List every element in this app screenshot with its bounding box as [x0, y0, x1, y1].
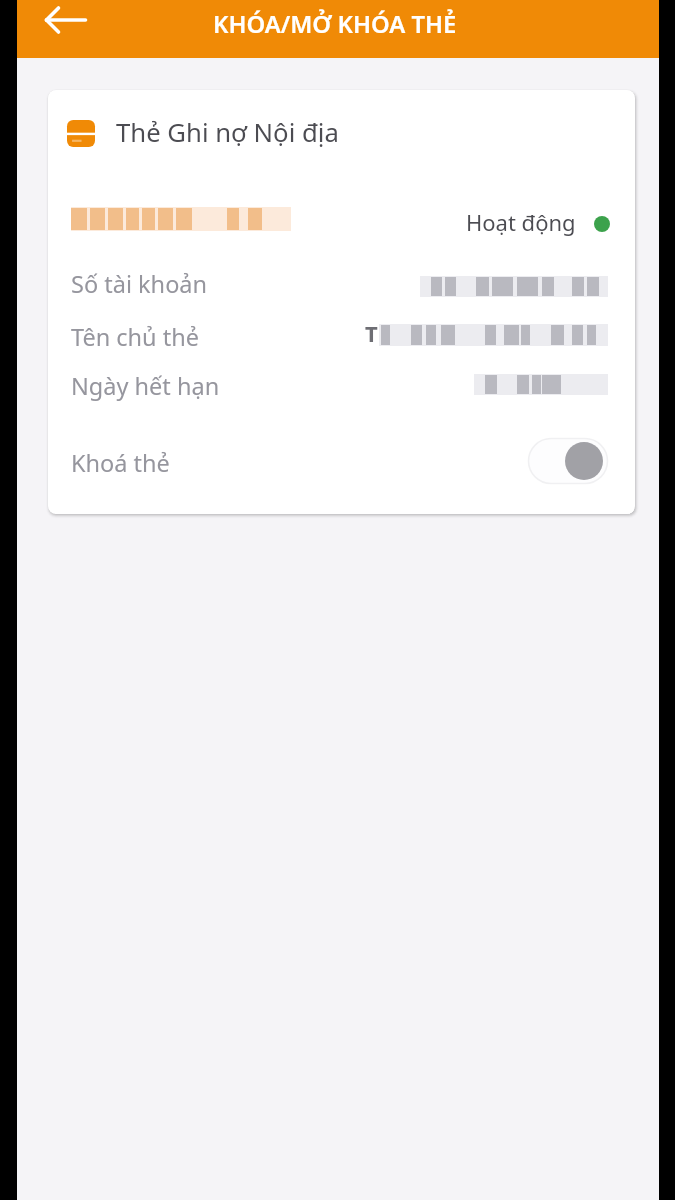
staticText: Số tài khoản — [71, 268, 208, 300]
staticText: KHÓA/MỞ KHÓA THẺ — [213, 8, 457, 40]
staticText: T — [365, 318, 378, 348]
button[interactable]: Back — [27, 0, 75, 42]
staticText: Khoá thẻ — [71, 447, 170, 479]
staticText: Hoạt động — [466, 207, 576, 237]
staticText: Thẻ Ghi nợ Nội địa — [116, 115, 339, 150]
staticText: Ngày hết hạn — [71, 370, 220, 402]
button[interactable]: Khoá thẻ — [60, 428, 620, 494]
staticText: Tên chủ thẻ — [71, 321, 200, 353]
button[interactable]: Khoá thẻ, tắt — [528, 438, 608, 484]
